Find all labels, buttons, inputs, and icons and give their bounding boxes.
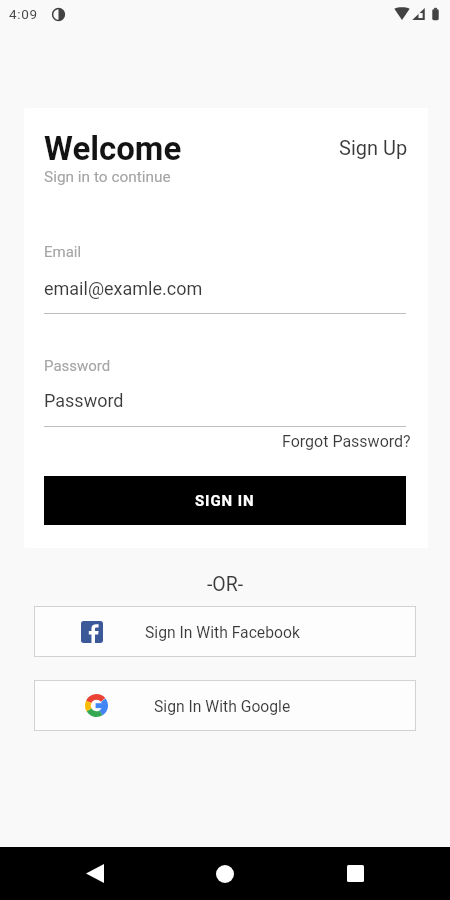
staticText: Email <box>44 243 82 261</box>
staticText: Password <box>44 390 124 411</box>
staticText: -OR- <box>0 573 450 596</box>
staticText: Welcome <box>44 129 182 168</box>
staticText: Sign In With Facebook <box>145 623 300 641</box>
button[interactable]: Back <box>65 847 125 900</box>
staticText: Sign In With Google <box>154 697 291 715</box>
button[interactable]: Home <box>195 847 255 900</box>
staticText: Password <box>44 357 111 375</box>
button[interactable]: Email <box>44 243 406 314</box>
button[interactable]: Recent apps <box>325 847 385 900</box>
staticText: 4:09 <box>9 6 38 22</box>
button[interactable]: Password <box>44 357 406 427</box>
staticText: SIGN IN <box>195 492 255 510</box>
button[interactable]: Sign Up <box>331 132 416 163</box>
staticText: Sign Up <box>339 136 408 159</box>
button[interactable]: Sign In With Google <box>34 680 416 731</box>
staticText: Sign in to continue <box>44 168 171 186</box>
button[interactable]: Sign In With Facebook <box>34 606 416 657</box>
staticText: Forgot Password? <box>282 432 411 451</box>
button[interactable]: SIGN IN <box>44 476 406 525</box>
button[interactable]: Forgot Password? <box>278 430 415 453</box>
staticText: email@examle.com <box>44 278 203 299</box>
